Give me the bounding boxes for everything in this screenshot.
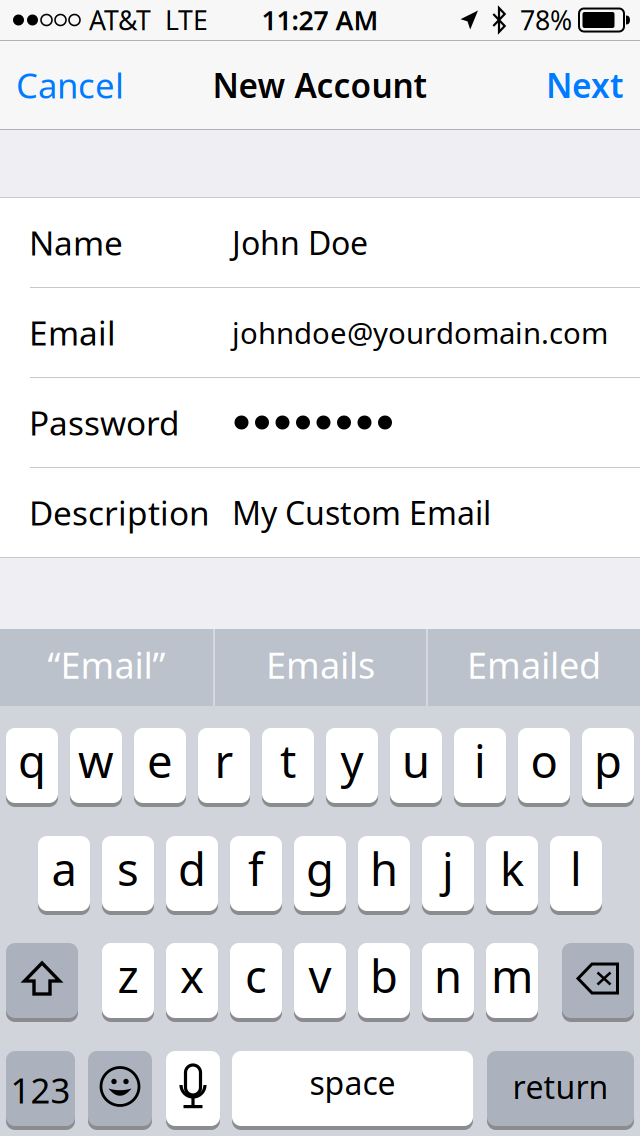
- staticText: John Doe: [232, 221, 368, 264]
- staticText: t: [280, 730, 296, 791]
- button[interactable]: y: [326, 728, 378, 807]
- button[interactable]: Password: [0, 378, 640, 467]
- staticText: Name: [29, 220, 123, 265]
- staticText: k: [500, 838, 524, 899]
- staticText: d: [178, 838, 206, 899]
- button[interactable]: f: [230, 836, 282, 915]
- button[interactable]: t: [262, 728, 314, 807]
- staticText: Cancel: [16, 62, 124, 108]
- button[interactable]: Emailed: [428, 629, 640, 706]
- staticText: x: [180, 945, 204, 1006]
- staticText: “Email”: [47, 641, 165, 689]
- staticText: v: [308, 945, 331, 1006]
- staticText: o: [530, 730, 557, 791]
- button[interactable]: 123: [6, 1051, 75, 1130]
- button[interactable]: s: [102, 836, 154, 915]
- staticText: j: [442, 838, 454, 899]
- staticText: return: [512, 1065, 608, 1108]
- button[interactable]: g: [294, 836, 346, 915]
- staticText: y: [340, 730, 363, 791]
- button[interactable]: n: [422, 943, 474, 1022]
- button[interactable]: space: [232, 1051, 473, 1130]
- staticText: Next: [546, 63, 624, 107]
- staticText: Email: [29, 310, 116, 355]
- button[interactable]: p: [582, 728, 634, 807]
- staticText: u: [402, 730, 430, 791]
- staticText: 78%: [520, 2, 572, 38]
- button[interactable]: r: [198, 728, 250, 807]
- staticText: g: [306, 838, 334, 899]
- staticText: n: [434, 945, 462, 1006]
- staticText: Emails: [266, 641, 375, 689]
- staticText: f: [248, 838, 264, 899]
- staticText: h: [370, 838, 398, 899]
- staticText: e: [147, 730, 173, 791]
- staticText: 11:27 AM: [261, 2, 378, 38]
- button[interactable]: Name: [0, 198, 640, 287]
- button[interactable]: j: [422, 836, 474, 915]
- button[interactable]: c: [230, 943, 282, 1022]
- button[interactable]: m: [486, 943, 538, 1022]
- staticText: z: [117, 945, 138, 1006]
- staticText: m: [491, 945, 533, 1006]
- button[interactable]: Email: [0, 288, 640, 377]
- staticText: LTE: [165, 2, 208, 38]
- button[interactable]: b: [358, 943, 410, 1022]
- button[interactable]: a: [38, 836, 90, 915]
- button[interactable]: u: [390, 728, 442, 807]
- button[interactable]: o: [518, 728, 570, 807]
- staticText: b: [370, 945, 398, 1006]
- button[interactable]: q: [6, 728, 58, 807]
- button[interactable]: Shift: [6, 943, 78, 1022]
- button[interactable]: Emoji: [88, 1051, 152, 1130]
- button[interactable]: e: [134, 728, 186, 807]
- staticText: New Account: [212, 63, 427, 107]
- button[interactable]: h: [358, 836, 410, 915]
- staticText: johndoe@yourdomain.com: [232, 313, 608, 352]
- button[interactable]: return: [487, 1051, 634, 1130]
- staticText: s: [117, 838, 139, 899]
- button[interactable]: Cancel: [0, 41, 140, 129]
- button[interactable]: d: [166, 836, 218, 915]
- button[interactable]: Emails: [215, 629, 426, 706]
- staticText: q: [18, 730, 46, 791]
- button[interactable]: “Email”: [0, 629, 213, 706]
- staticText: Emailed: [467, 641, 601, 689]
- staticText: AT&T: [89, 2, 151, 38]
- button[interactable]: Next: [530, 41, 640, 129]
- button[interactable]: l: [550, 836, 602, 915]
- staticText: w: [78, 730, 114, 791]
- staticText: i: [474, 730, 486, 791]
- button[interactable]: w: [70, 728, 122, 807]
- button[interactable]: v: [294, 943, 346, 1022]
- button[interactable]: z: [102, 943, 154, 1022]
- button[interactable]: Description: [0, 468, 640, 557]
- staticText: l: [570, 838, 582, 899]
- staticText: c: [245, 945, 267, 1006]
- staticText: Description: [29, 490, 210, 535]
- staticText: a: [51, 838, 76, 899]
- staticText: Password: [29, 400, 180, 445]
- staticText: p: [594, 730, 622, 791]
- button[interactable]: k: [486, 836, 538, 915]
- staticText: My Custom Email: [232, 491, 491, 534]
- button[interactable]: Delete: [562, 943, 634, 1022]
- staticText: 123: [10, 1067, 70, 1113]
- button[interactable]: x: [166, 943, 218, 1022]
- button[interactable]: Dictation: [166, 1051, 220, 1130]
- staticText: r: [214, 730, 233, 791]
- button[interactable]: i: [454, 728, 506, 807]
- staticText: space: [309, 1061, 395, 1104]
